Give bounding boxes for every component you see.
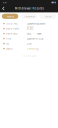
staticText: 2.00: [27, 42, 31, 45]
staticText: 2024-06-18 10:32: [27, 37, 43, 40]
staticText: Order No.: [6, 22, 19, 25]
staticText: Bank name: [6, 27, 19, 30]
staticText: ▮▮ ▮: [51, 1, 55, 3]
staticText: No more data: [22, 54, 36, 57]
staticText: Fee: [6, 42, 9, 45]
staticText: 6212 **** 8866: [27, 32, 41, 35]
staticText: Pending: [27, 47, 39, 50]
staticText: Failed: [45, 15, 51, 18]
button[interactable]: Back: [0, 5, 7, 12]
staticText: Time: [6, 37, 11, 40]
staticText: Completed: [23, 15, 34, 18]
staticText: Status: [6, 47, 13, 50]
button[interactable]: Completed: [21, 14, 37, 19]
staticText: ICBC: [27, 27, 34, 30]
staticText: Withdrawal Records: [14, 7, 43, 10]
button[interactable]: Pending: [2, 14, 18, 19]
staticText: 202406181032145678: [27, 22, 45, 25]
staticText: 9:41: [2, 1, 6, 4]
staticText: Bank card: [6, 32, 18, 35]
button[interactable]: Failed: [40, 14, 56, 19]
staticText: Pending: [7, 15, 14, 18]
